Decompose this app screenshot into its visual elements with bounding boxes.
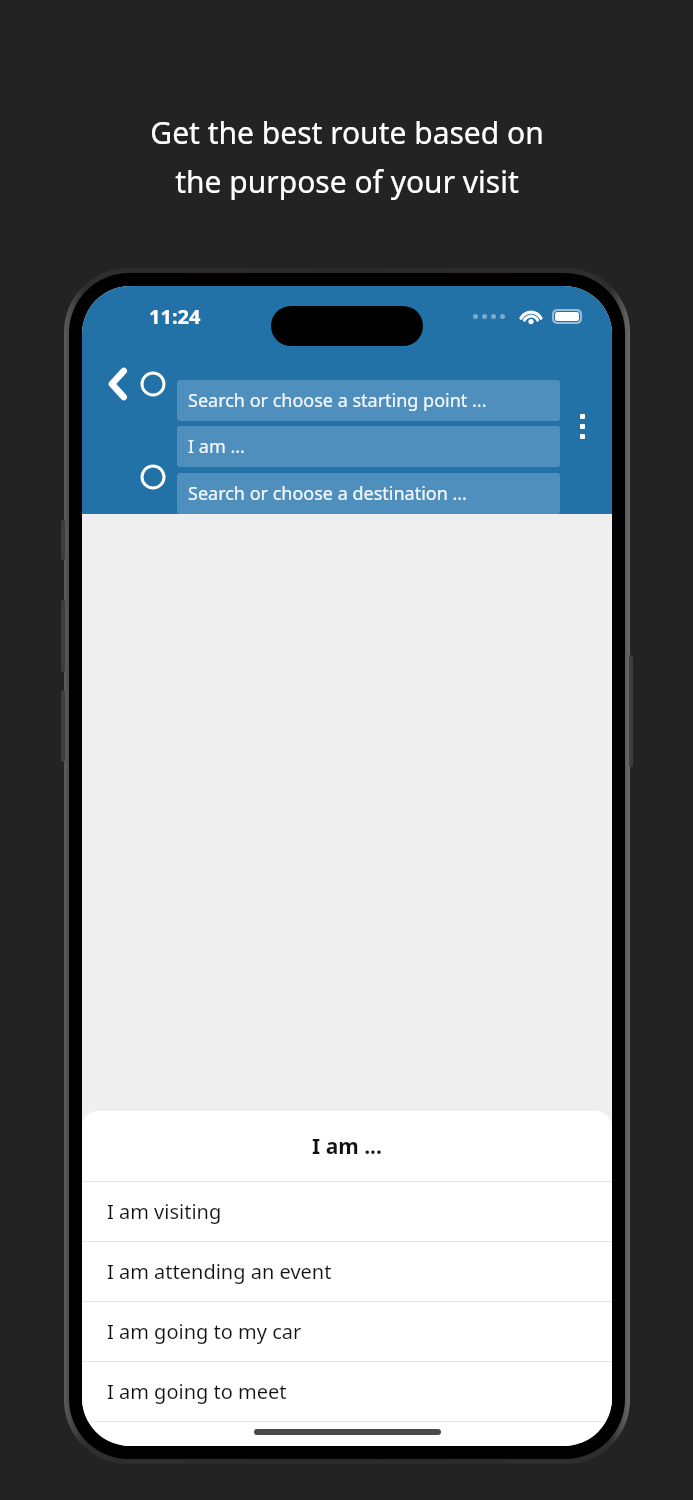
button[interactable]: More options (564, 408, 600, 444)
button[interactable]: I am attending an event (82, 1242, 612, 1301)
button[interactable]: I am visiting (82, 1182, 612, 1241)
staticText: the purpose of your visit (175, 161, 519, 202)
staticText: I am visiting (107, 1198, 222, 1225)
button[interactable]: I am going to meet (82, 1362, 612, 1421)
staticText: 11:24 (149, 303, 201, 330)
staticText: I am going to meet (107, 1378, 287, 1405)
button[interactable]: Back (98, 364, 138, 404)
button[interactable]: I am going to my car (82, 1302, 612, 1361)
button[interactable]: Search or choose a starting point ... (177, 380, 560, 421)
staticText: I am ... (188, 434, 245, 459)
button[interactable]: Search or choose a destination ... (177, 473, 560, 514)
staticText: Search or choose a starting point ... (188, 388, 487, 413)
staticText: I am ... (312, 1132, 382, 1161)
staticText: I am going to my car (107, 1318, 302, 1345)
staticText: Search or choose a destination ... (188, 481, 467, 506)
button[interactable]: I am ... (177, 426, 560, 467)
staticText: Get the best route based on (150, 112, 544, 153)
staticText: I am attending an event (107, 1258, 332, 1285)
